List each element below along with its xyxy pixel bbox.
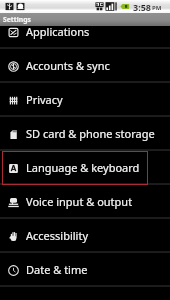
staticText: 3:58 bbox=[133, 1, 151, 13]
button[interactable]: Language & keyboard bbox=[0, 151, 170, 185]
staticText: Language & keyboard bbox=[26, 160, 140, 175]
staticText: Date & time bbox=[26, 262, 88, 277]
staticText: Settings bbox=[3, 15, 31, 24]
staticText: Accessibility bbox=[26, 228, 89, 243]
staticText: Privacy bbox=[26, 92, 63, 107]
button[interactable]: Applications bbox=[0, 26, 170, 49]
button[interactable]: Privacy bbox=[0, 83, 170, 117]
button[interactable]: Voice input & output bbox=[0, 185, 170, 219]
staticText: PM bbox=[152, 4, 162, 12]
staticText: Applications bbox=[26, 26, 90, 39]
button[interactable]: Date & time bbox=[0, 253, 170, 287]
button[interactable]: SD card & phone storage bbox=[0, 117, 170, 151]
button[interactable]: Accounts & sync bbox=[0, 49, 170, 83]
button[interactable]: Accessibility bbox=[0, 219, 170, 253]
staticText: SD card & phone storage bbox=[26, 126, 155, 141]
staticText: Voice input & output bbox=[26, 194, 133, 209]
staticText: Accounts & sync bbox=[26, 58, 110, 73]
